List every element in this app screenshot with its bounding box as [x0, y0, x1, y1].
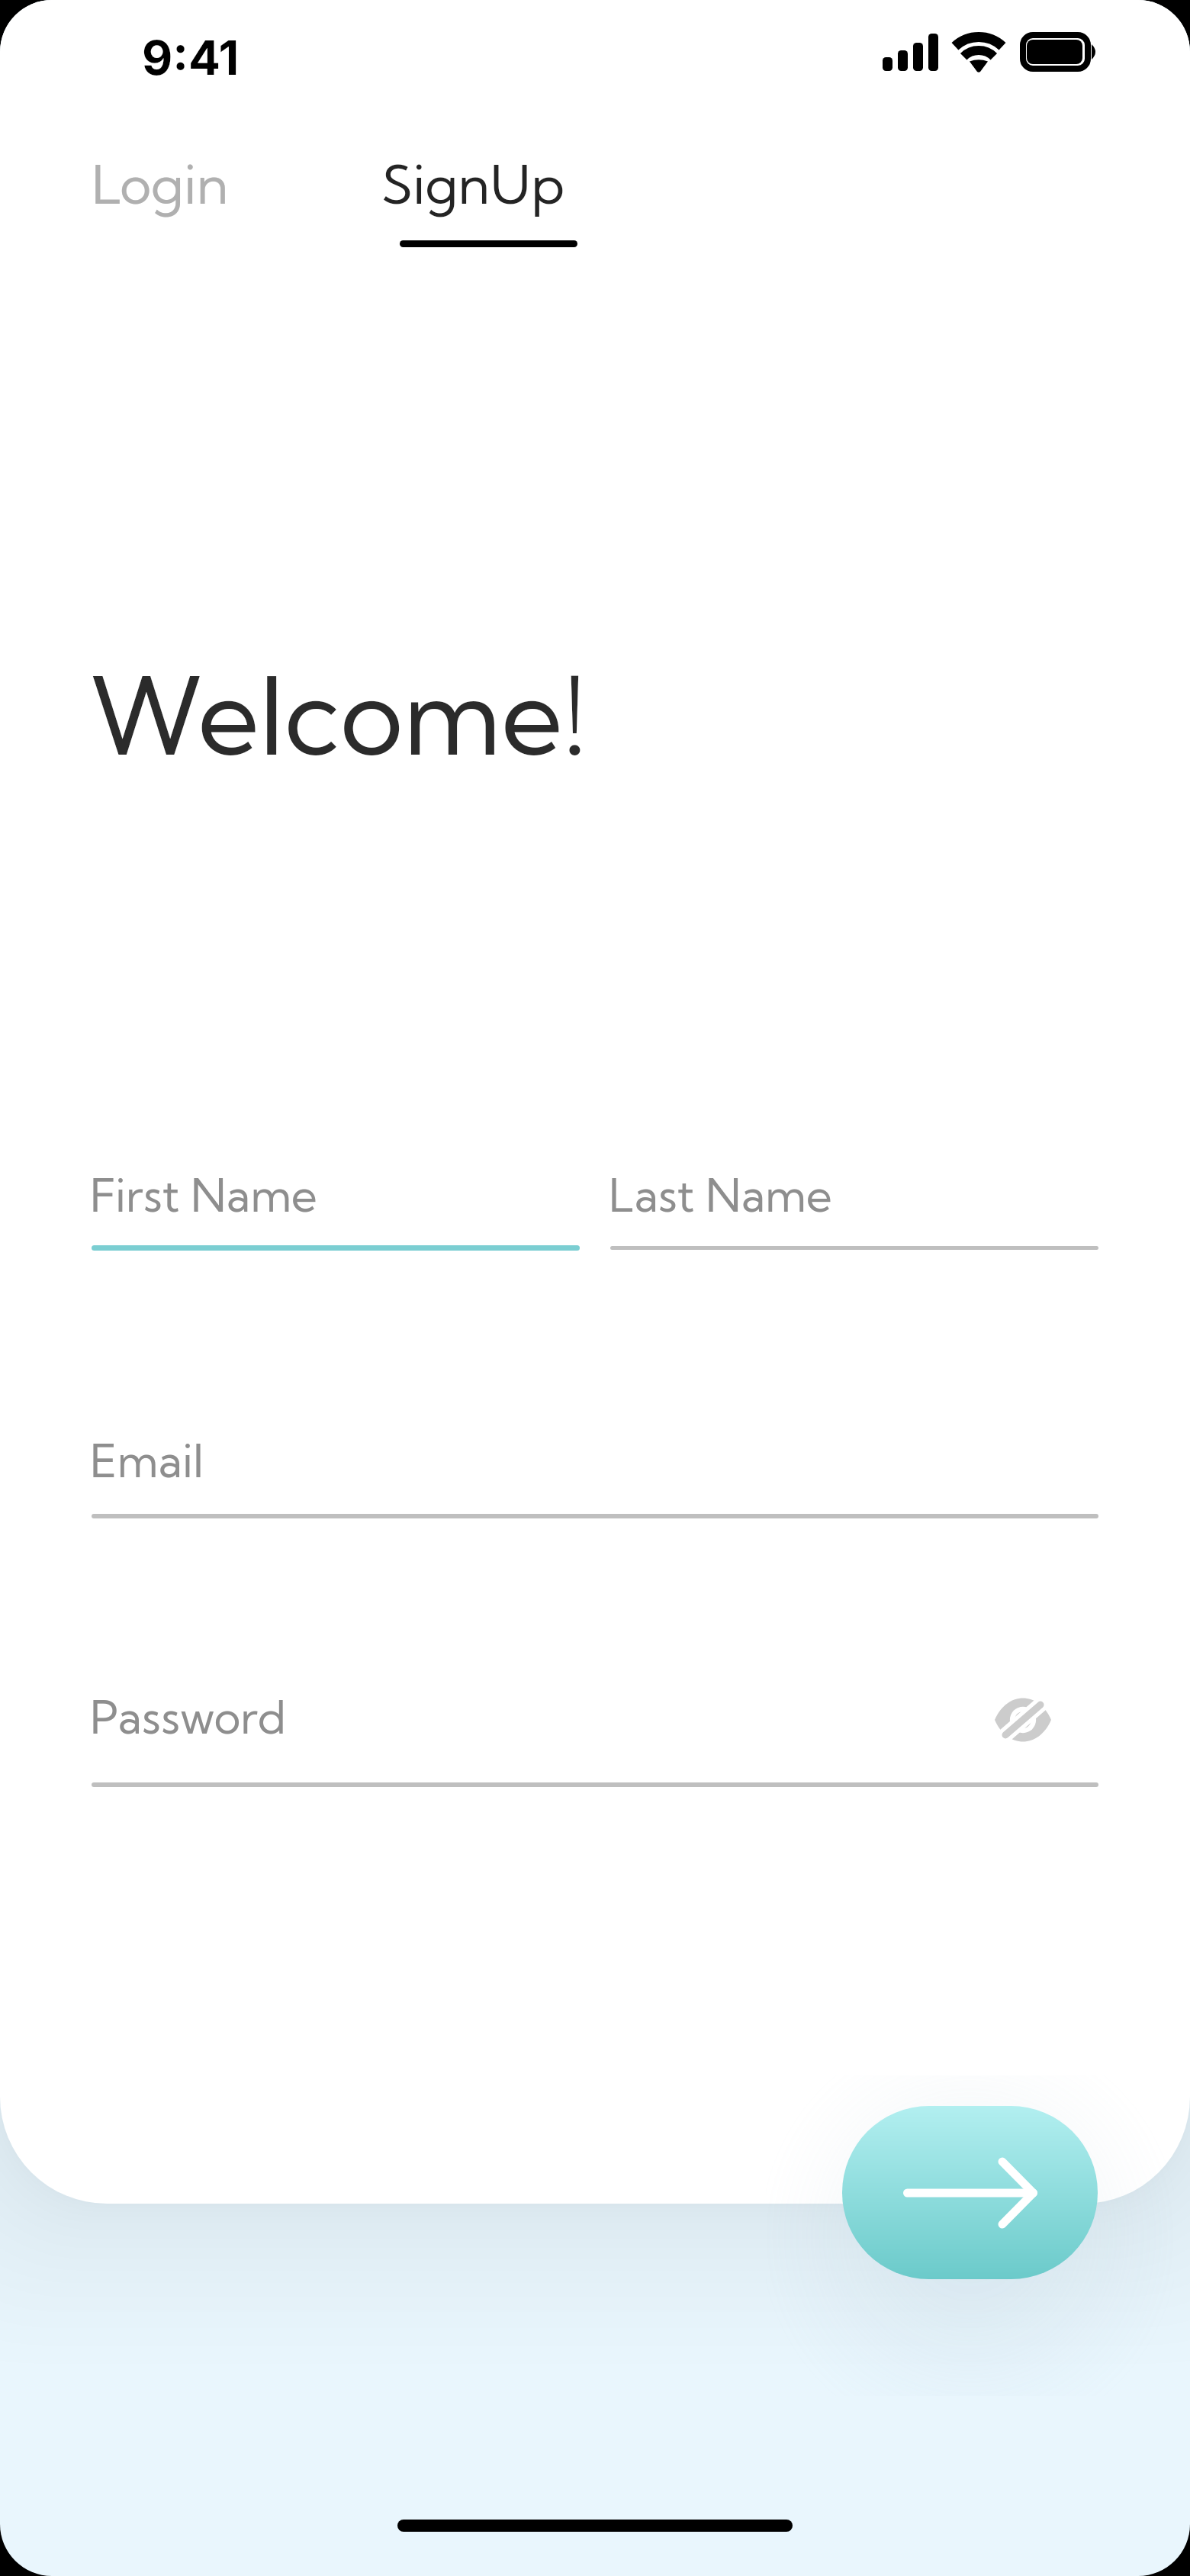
staticText: Welcome! — [90, 649, 587, 782]
staticText: Password — [90, 1689, 287, 1745]
button[interactable]: Login — [50, 130, 271, 252]
staticText: Last Name — [609, 1167, 832, 1223]
staticText: First Name — [90, 1167, 317, 1223]
button[interactable]: SignUp — [337, 130, 605, 267]
staticText: 9:41 — [142, 29, 240, 86]
staticText: Login — [92, 151, 229, 217]
button[interactable]: Next — [842, 2106, 1098, 2279]
staticText: Email — [90, 1433, 204, 1489]
staticText: SignUp — [381, 151, 564, 217]
button[interactable]: Show password — [982, 1679, 1064, 1761]
